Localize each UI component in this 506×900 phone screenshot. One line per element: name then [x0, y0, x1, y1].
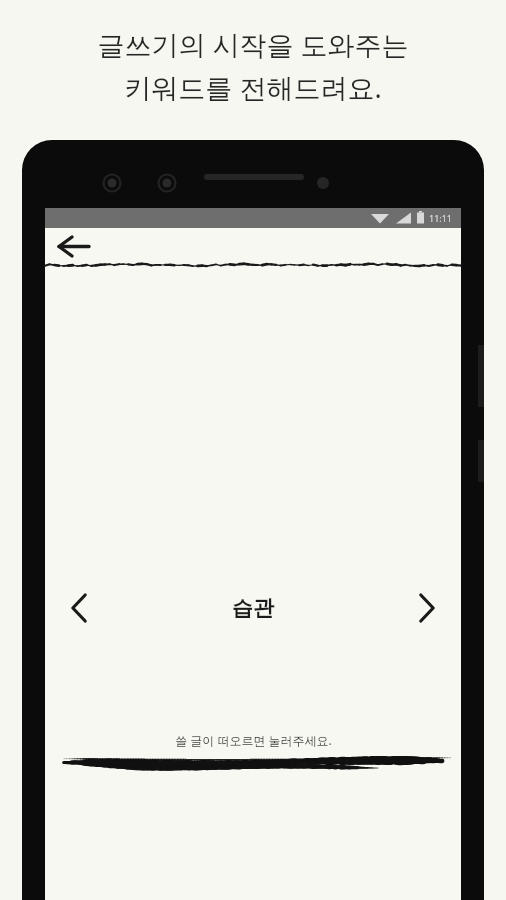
- staticText: 쓸 글이 떠오르면 눌러주세요.: [175, 732, 332, 748]
- button[interactable]: 쓸 글이 떠오르면 눌러주세요.: [45, 732, 461, 775]
- staticText: 글쓰기의 시작을 도와주는: [97, 26, 409, 63]
- staticText: 키워드를 전해드려요.: [124, 69, 382, 106]
- button[interactable]: Previous keyword: [57, 586, 101, 630]
- button[interactable]: 습관: [232, 595, 274, 621]
- staticText: 11:11: [429, 212, 453, 224]
- button[interactable]: Back: [53, 228, 97, 265]
- button[interactable]: Next keyword: [405, 586, 449, 630]
